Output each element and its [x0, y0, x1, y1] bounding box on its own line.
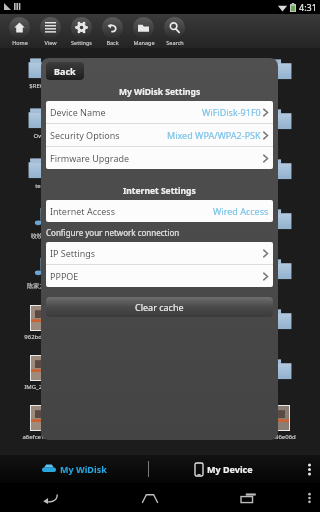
button[interactable] [80, 198, 160, 248]
staticText: test [35, 182, 46, 190]
button[interactable] [80, 98, 160, 148]
staticText: 292df542 [187, 283, 214, 291]
button[interactable]: 学员 - 我.. [160, 148, 240, 198]
button[interactable] [240, 198, 320, 248]
staticText: Settings [71, 39, 92, 46]
button[interactable]: Owner2 [80, 48, 160, 98]
staticText: Internet Settings [123, 185, 196, 197]
staticText: 陈家之·修 [27, 282, 53, 290]
staticText: 学员 - 我.. [187, 182, 214, 190]
staticText: Internet Access [50, 205, 115, 217]
button[interactable]: Firmware Upgrade [46, 147, 273, 169]
staticText: Mixed WPA/WPA2-PSK [167, 129, 261, 141]
button[interactable] [160, 398, 240, 448]
button[interactable]: $RECYC [0, 48, 80, 98]
staticText: Security Options [50, 129, 120, 141]
staticText: My Device [207, 463, 253, 475]
staticText: Owner2 [109, 82, 132, 90]
button[interactable]: More options [298, 483, 320, 512]
button[interactable] [80, 298, 160, 348]
button[interactable]: Internet Access [46, 200, 273, 222]
button[interactable]: Device Name [46, 101, 273, 123]
staticText: View [44, 39, 57, 46]
button[interactable]: Clear cache [46, 297, 273, 317]
staticText: Firmware Upgrade [50, 152, 130, 164]
button[interactable]: IP Settings [46, 242, 273, 264]
button[interactable]: 陈家之·修 [0, 248, 80, 298]
staticText: n [198, 132, 202, 140]
button[interactable] [240, 248, 320, 298]
staticText: Own [33, 132, 47, 140]
button[interactable]: Home [4, 14, 35, 48]
button[interactable]: IMG_20131 [0, 348, 80, 398]
button[interactable]: 115_1019.. [160, 298, 240, 348]
staticText: 4c086e06d [265, 433, 296, 441]
staticText: My WiDisk [60, 463, 107, 475]
button[interactable] [80, 248, 160, 298]
staticText: IMG_20131 [24, 383, 56, 391]
button[interactable]: 292df542 [160, 248, 240, 298]
button[interactable]: Back [0, 483, 100, 512]
staticText: Search [166, 39, 184, 46]
button[interactable]: n [160, 98, 240, 148]
staticText: PPPOE [50, 270, 79, 282]
staticText: Manage [133, 39, 155, 46]
staticText: Back [106, 39, 119, 46]
button[interactable]: My WiDisk [0, 455, 148, 483]
button[interactable]: a6efce1b9d1 [0, 398, 80, 448]
button[interactable] [240, 148, 320, 198]
button[interactable] [240, 98, 320, 148]
button[interactable]: 咬咬傻 [0, 198, 80, 248]
staticText: IP Settings [50, 247, 96, 259]
staticText: Home [12, 39, 28, 46]
staticText: 咬咬傻 [31, 232, 49, 240]
button[interactable]: PPPOE [46, 265, 273, 287]
button[interactable]: View [35, 14, 66, 48]
staticText: a6efce1b9d1 [22, 433, 59, 441]
button[interactable] [80, 148, 160, 198]
button[interactable]: Back [97, 14, 128, 48]
button[interactable] [240, 348, 320, 398]
staticText: Back [54, 65, 76, 77]
staticText: 962bd4073 [24, 333, 56, 341]
staticText: 4:31 [299, 1, 317, 13]
button[interactable]: Security Options [46, 124, 273, 146]
button[interactable] [240, 48, 320, 98]
staticText: Configure your network connection [46, 227, 180, 238]
button[interactable]: Own [0, 98, 80, 148]
button[interactable] [80, 398, 160, 448]
button[interactable]: ner2 [160, 48, 240, 98]
button[interactable]: 4c086e06d [240, 398, 320, 448]
staticText: My WiDisk Settings [119, 86, 201, 98]
button[interactable]: Settings [66, 14, 97, 48]
button[interactable]: Back [46, 62, 84, 80]
staticText: WiFiDisk-91F0 [202, 106, 261, 118]
staticText: Wired Access [213, 205, 269, 217]
staticText: Device Name [50, 106, 106, 118]
button[interactable]: My Device [149, 455, 298, 483]
button[interactable]: Home [100, 483, 199, 512]
button[interactable]: More options [298, 455, 320, 483]
button[interactable]: rmvb [160, 198, 240, 248]
staticText: Clear cache [135, 301, 184, 313]
button[interactable] [240, 298, 320, 348]
button[interactable]: 962bd4073 [0, 298, 80, 348]
button[interactable]: Search [159, 14, 190, 48]
staticText: $RECYC [29, 82, 51, 90]
button[interactable]: Recent apps [199, 483, 298, 512]
button[interactable]: test [0, 148, 80, 198]
button[interactable]: Manage [128, 14, 159, 48]
